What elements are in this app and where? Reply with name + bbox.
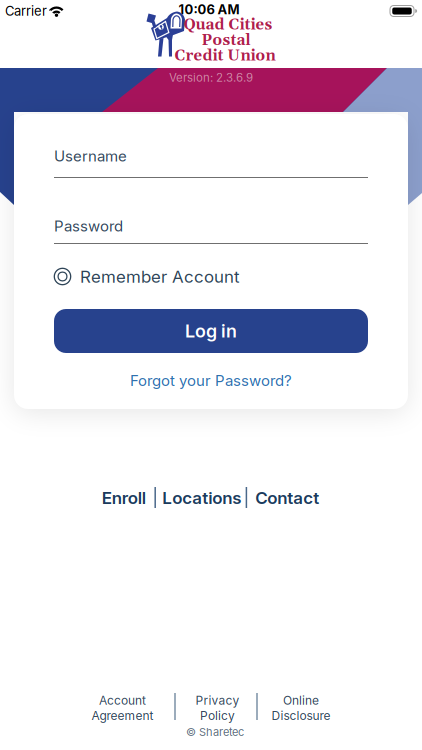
staticText: Enroll	[102, 488, 146, 508]
button[interactable]: Username	[0, 0, 422, 750]
button[interactable]: Enroll	[102, 488, 146, 508]
button[interactable]: Password	[0, 0, 422, 750]
button[interactable]: Privacy	[195, 693, 239, 723]
button[interactable]: Locations	[162, 488, 241, 508]
button[interactable]: Online	[271, 693, 330, 723]
staticText: Quad Cities	[183, 15, 272, 34]
staticText: Disclosure	[271, 708, 330, 723]
staticText: Agreement	[91, 708, 153, 723]
staticText: Postal	[201, 31, 250, 50]
staticText: Contact	[255, 488, 319, 508]
staticText: Version: 2.3.6.9	[169, 70, 253, 84]
staticText: © Sharetec	[186, 725, 244, 738]
staticText: Privacy	[195, 693, 239, 707]
staticText: Username	[54, 147, 127, 165]
staticText: Locations	[162, 488, 241, 508]
staticText: Account	[99, 693, 146, 707]
button[interactable]: Contact	[255, 488, 319, 508]
button[interactable]: Account	[91, 693, 153, 723]
staticText: Carrier	[5, 3, 47, 19]
staticText: 10:06 AM	[178, 2, 239, 17]
button[interactable]: Forgot your Password?	[130, 372, 292, 389]
button[interactable]: Remember Account	[54, 264, 368, 288]
staticText: Log in	[185, 320, 237, 342]
button[interactable]: Log in	[54, 309, 368, 353]
staticText: Password	[54, 217, 123, 235]
staticText: Forgot your Password?	[130, 372, 292, 389]
staticText: Credit Union	[174, 46, 275, 65]
staticText: Online	[283, 693, 319, 707]
staticText: Remember Account	[80, 266, 240, 287]
staticText: Policy	[200, 708, 235, 723]
